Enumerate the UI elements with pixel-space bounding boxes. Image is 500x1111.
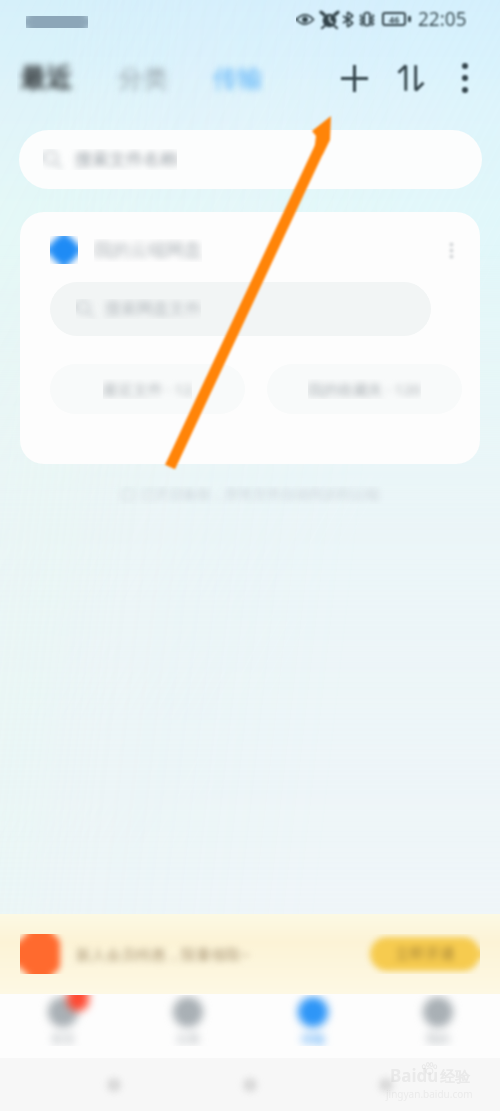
- button[interactable]: Back: [92, 1063, 136, 1107]
- button[interactable]: 搜索网盘文件: [50, 282, 431, 336]
- staticText: 46: [389, 13, 400, 25]
- staticText: Baidu: [390, 1064, 439, 1087]
- button[interactable]: 立即开通: [370, 937, 480, 971]
- button[interactable]: Home: [228, 1063, 272, 1107]
- button[interactable]: Add: [331, 55, 377, 101]
- staticText: 传输: [301, 1031, 325, 1046]
- staticText: 传输: [213, 63, 263, 94]
- button[interactable]: 我的收藏夹 · 120: [267, 364, 462, 414]
- button[interactable]: 最近: [17, 54, 75, 103]
- button[interactable]: More: [436, 235, 466, 265]
- staticText: 经验: [440, 1068, 470, 1087]
- staticText: 我的云端网盘: [94, 239, 202, 262]
- staticText: 分类: [176, 1031, 200, 1046]
- staticText: 分类: [118, 63, 168, 94]
- button[interactable]: 传输: [210, 55, 266, 102]
- button[interactable]: 首页: [0, 995, 125, 1058]
- button[interactable]: 传输: [250, 995, 375, 1058]
- staticText: 我的: [426, 1031, 450, 1046]
- button[interactable]: Recents: [364, 1063, 408, 1107]
- button[interactable]: 最近文件 · 12: [50, 364, 245, 414]
- staticText: jingyan.baidu.com: [386, 1087, 473, 1101]
- staticText: 我的收藏夹 · 120: [308, 379, 421, 399]
- button[interactable]: 我的: [375, 995, 500, 1058]
- button[interactable]: 分类: [115, 55, 171, 102]
- button[interactable]: Sort: [388, 55, 434, 101]
- staticText: 首页: [51, 1031, 75, 1046]
- staticText: 立即开通: [395, 945, 455, 964]
- button[interactable]: 搜索文件名称: [19, 130, 482, 189]
- staticText: 最近文件 · 12: [103, 379, 192, 399]
- staticText: 搜索文件名称: [75, 149, 177, 170]
- staticText: 最近: [20, 62, 72, 95]
- button[interactable]: More options: [442, 55, 488, 101]
- button[interactable]: 分类: [125, 995, 250, 1058]
- staticText: 新人会员特惠，限量领取~: [76, 944, 250, 964]
- staticText: 已开启备份，所有文件自动同步到云端: [141, 486, 379, 504]
- staticText: 22:05: [418, 6, 467, 32]
- staticText: 搜索网盘文件: [105, 299, 201, 319]
